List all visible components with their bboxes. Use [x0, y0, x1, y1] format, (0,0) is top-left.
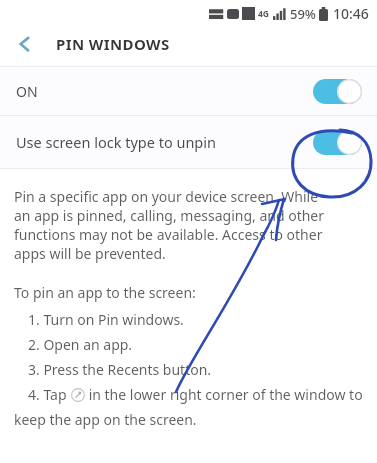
button[interactable]: ON	[0, 67, 377, 115]
button[interactable]: Back	[8, 27, 42, 61]
button[interactable]: Toggle	[313, 130, 362, 155]
staticText: in the lower right corner of the window …	[85, 385, 363, 404]
staticText: apps will be prevented.	[14, 244, 166, 263]
staticText: 4. Tap	[28, 385, 71, 404]
staticText: ON	[16, 82, 38, 101]
staticText: keep the app on the screen.	[14, 410, 197, 429]
staticText: PIN WINDOWS	[56, 34, 170, 54]
staticText: To pin an app to the screen:	[14, 283, 196, 302]
staticText: Pin a specific app on your device screen…	[14, 187, 319, 206]
button[interactable]: Toggle	[313, 79, 362, 104]
staticText: 1. Turn on Pin windows.	[28, 310, 184, 329]
staticText: functions may not be available. Access t…	[14, 225, 323, 244]
staticText: Use screen lock type to unpin	[16, 132, 216, 152]
staticText: 2. Open an app.	[28, 335, 133, 354]
staticText: 10:46	[333, 4, 369, 23]
button[interactable]: Use screen lock type to unpin	[0, 116, 377, 168]
staticText: 4G	[258, 8, 270, 20]
staticText: 59%	[290, 5, 316, 23]
staticText: an app is pinned, calling, messaging, an…	[14, 206, 325, 225]
staticText: 3. Press the Recents button.	[28, 360, 212, 379]
